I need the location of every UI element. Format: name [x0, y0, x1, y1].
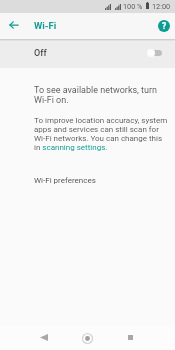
button[interactable]: Recents — [118, 325, 142, 349]
staticText: To see available networks, turn Wi-Fi on… — [34, 85, 158, 105]
button[interactable]: Off — [0, 41, 175, 68]
staticText: To improve location accuracy, system app… — [34, 116, 168, 152]
staticText: Wi-Fi preferences — [34, 176, 96, 185]
staticText: Off — [34, 48, 47, 59]
button[interactable]: Back — [2, 13, 26, 37]
button[interactable]: Home — [75, 326, 99, 350]
button[interactable]: Help — [152, 14, 175, 38]
staticText: ? — [162, 21, 167, 31]
staticText: Wi-Fi — [34, 20, 57, 31]
staticText: 100 % — [123, 2, 143, 11]
button[interactable]: Back — [32, 325, 56, 349]
button[interactable]: Wi-Fi preferences — [0, 171, 175, 189]
staticText: 12:00 — [152, 2, 171, 11]
